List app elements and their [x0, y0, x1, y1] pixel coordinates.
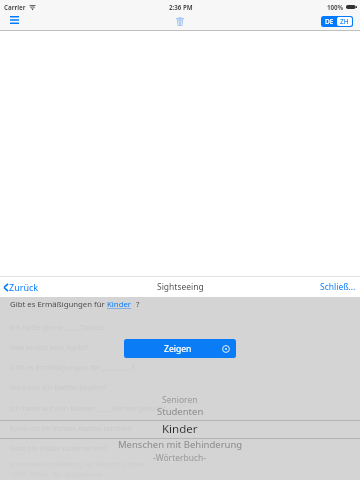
button[interactable]: Kinder — [107, 299, 134, 310]
staticText: Kinder — [107, 299, 134, 310]
button[interactable]: Menu — [10, 16, 19, 24]
staticText: Zurück — [9, 281, 39, 293]
button[interactable]: DE — [322, 17, 337, 26]
staticText: Gibt es Ermäßigungen für — [10, 299, 107, 310]
button[interactable]: Zeigen — [124, 339, 236, 358]
button[interactable]: Menschen mit Behinderung — [0, 438, 360, 452]
button[interactable]: ZH — [337, 17, 352, 26]
button[interactable]: Studenten — [0, 405, 360, 419]
staticText: 100% — [327, 3, 344, 11]
staticText: Ich habe auf den Namen ____ Karten gebuc… — [10, 403, 169, 413]
button[interactable]: Schließ... — [320, 281, 356, 293]
staticText: 2:36 PM — [169, 3, 193, 11]
staticText: Schließ... — [320, 281, 356, 293]
staticText: Sightseeing — [157, 281, 204, 293]
staticText: Senioren — [162, 394, 198, 406]
button[interactable]: Senioren — [0, 394, 360, 408]
button[interactable]: Zurück — [3, 281, 39, 293]
staticText: Zeigen — [164, 343, 192, 355]
button[interactable]: Kinder — [0, 421, 360, 435]
button[interactable]: Delete — [175, 16, 185, 26]
staticText: ? — [134, 299, 140, 310]
staticText: ZH — [340, 17, 349, 26]
staticText: DE — [325, 17, 334, 26]
staticText: Menschen mit Behinderung — [118, 438, 243, 451]
staticText: Carrier — [4, 3, 26, 11]
staticText: Studenten — [157, 405, 204, 418]
staticText: -Wörterbuch- — [153, 452, 207, 464]
staticText: Kinder — [162, 421, 198, 435]
button[interactable]: -Wörterbuch- — [0, 452, 360, 466]
